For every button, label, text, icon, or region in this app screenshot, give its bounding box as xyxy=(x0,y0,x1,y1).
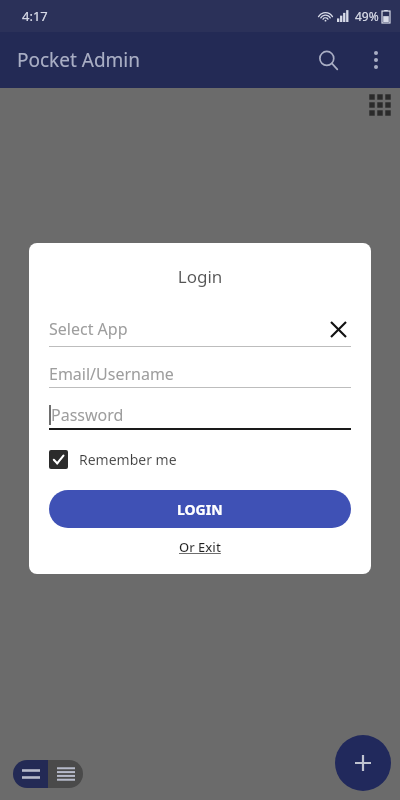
button[interactable]: Email/Username xyxy=(49,361,351,387)
button[interactable]: More options xyxy=(352,36,400,84)
button[interactable]: LOGIN xyxy=(49,490,351,528)
staticText: Password xyxy=(51,404,124,426)
staticText: Login xyxy=(49,265,351,288)
staticText: 49% xyxy=(355,8,379,24)
button[interactable]: Or Exit xyxy=(179,538,221,556)
button[interactable]: Clear selected app xyxy=(325,316,351,342)
staticText: Pocket Admin xyxy=(17,47,141,73)
staticText: Remember me xyxy=(79,450,177,469)
staticText: 4:17 xyxy=(22,7,48,25)
button[interactable]: Password xyxy=(49,402,351,428)
button[interactable]: Search xyxy=(304,36,352,84)
button[interactable]: Select App xyxy=(49,312,351,346)
staticText: Select App xyxy=(49,318,128,340)
button[interactable]: Compact list view xyxy=(13,760,48,788)
button[interactable]: Add xyxy=(335,735,391,791)
button[interactable]: Apps grid xyxy=(368,93,392,117)
staticText: LOGIN xyxy=(177,500,223,519)
button[interactable]: Remember me xyxy=(49,448,177,471)
button[interactable]: Detailed list view xyxy=(48,760,83,788)
staticText: Email/Username xyxy=(49,363,174,385)
